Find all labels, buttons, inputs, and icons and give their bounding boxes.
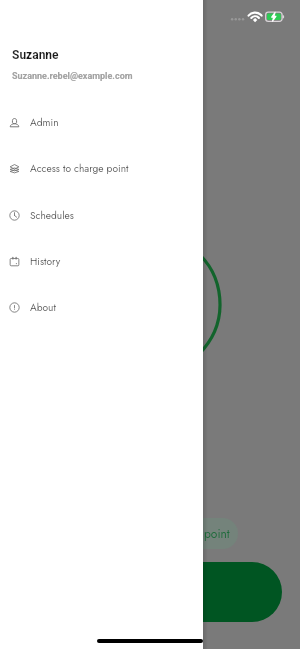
- staticText: Admin: [30, 115, 59, 130]
- staticText: Suzanne: [12, 48, 59, 62]
- button[interactable]: Schedules: [0, 192, 203, 238]
- staticText: Suzanne.rebel@example.com: [12, 71, 133, 82]
- button[interactable]: History: [0, 238, 203, 284]
- staticText: point: [204, 525, 230, 542]
- button[interactable]: Admin: [0, 99, 203, 145]
- staticText: Schedules: [30, 208, 74, 223]
- button[interactable]: About: [0, 284, 203, 330]
- staticText: About: [30, 300, 56, 315]
- button[interactable]: Access to charge point: [0, 145, 203, 191]
- button[interactable]: point: [150, 518, 238, 549]
- staticText: Access to charge point: [30, 161, 129, 176]
- button[interactable]: Start charging: [30, 562, 282, 622]
- staticText: History: [30, 254, 61, 269]
